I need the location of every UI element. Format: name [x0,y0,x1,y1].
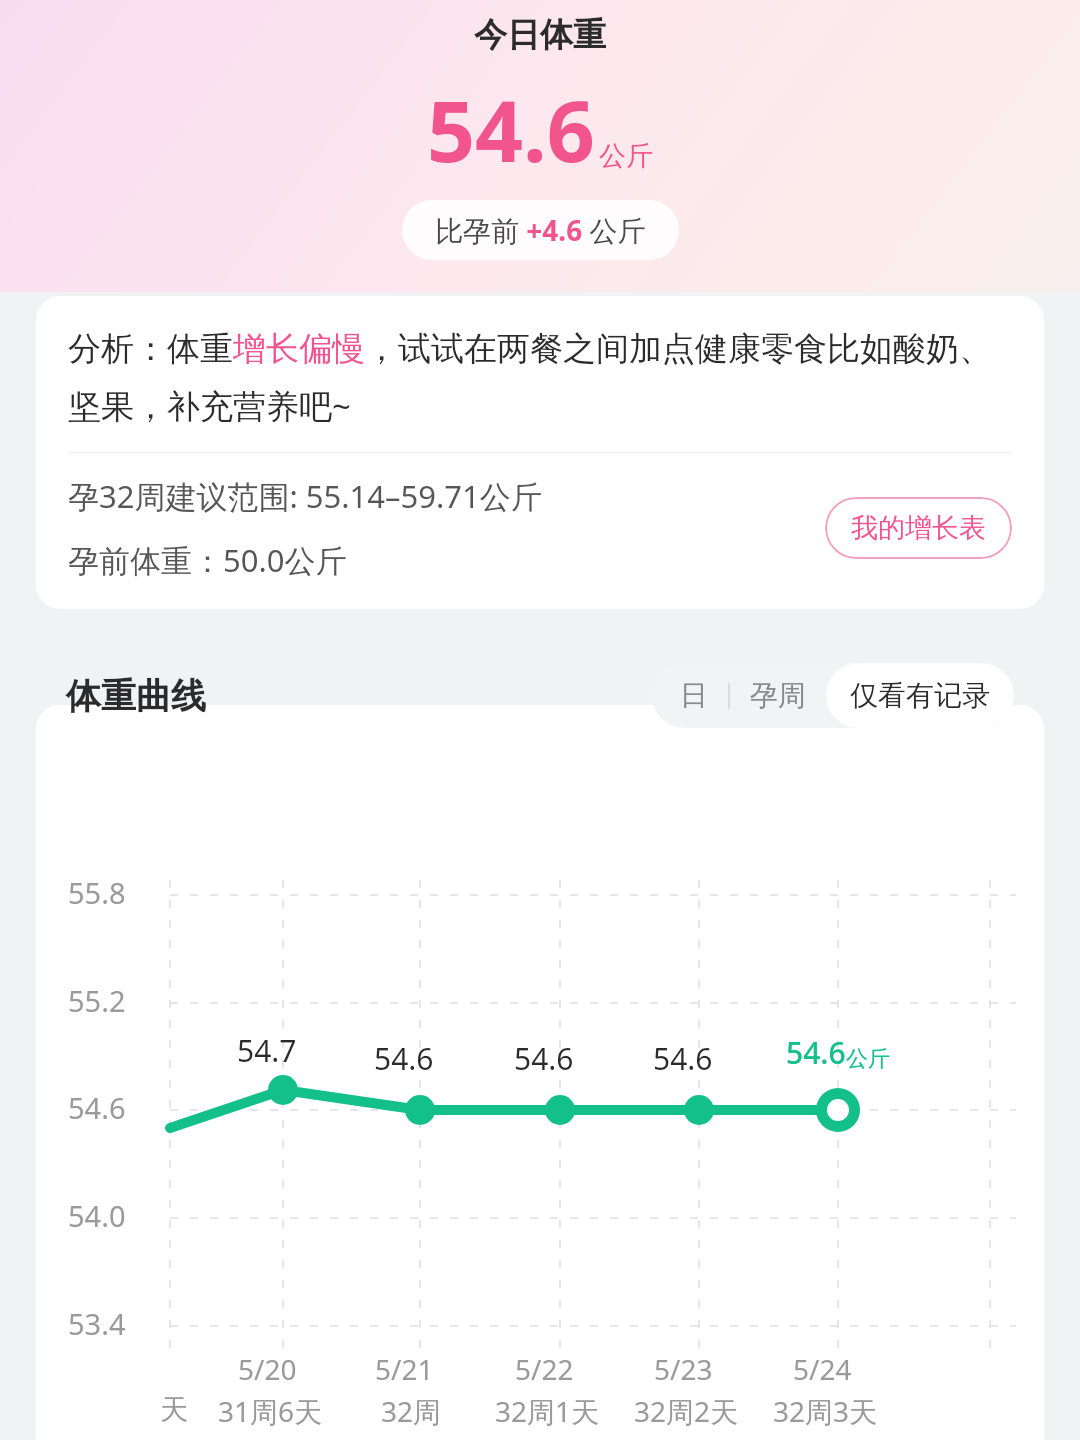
staticText: 54.6 [374,1038,434,1079]
staticText: 5/23 [654,1350,713,1388]
staticText: 仅看有记录 [850,678,990,713]
staticText: 32周2天 [634,1392,739,1430]
staticText: 53.4 [68,1304,126,1343]
staticText: 54.0 [68,1196,126,1235]
staticText: 5/21 [375,1350,434,1388]
staticText: 孕32周建议范围: 55.14–59.71公斤 [68,475,542,517]
staticText: 32周 [381,1392,442,1430]
button[interactable]: 比孕前 +4.6 公斤 [402,200,679,260]
staticText: 体重曲线 [66,674,206,718]
staticText: 比孕前 +4.6 公斤 [435,211,646,249]
staticText: 分析：体重增长偏慢，试试在两餐之间加点健康零食比如酸奶、坚果，补充营养吧~ [68,328,1012,428]
staticText: 55.2 [68,981,126,1020]
staticText: 54.6 [514,1038,574,1079]
staticText: 天 [160,1392,188,1427]
staticText: 孕前体重：50.0公斤 [68,539,347,581]
staticText: 54.6 [786,1032,846,1073]
staticText: 32周1天 [495,1392,600,1430]
button[interactable]: 仅看有记录 [826,663,1014,728]
staticText: 孕周 [750,678,806,713]
staticText: 公斤 [599,139,653,173]
staticText: 31周6天 [218,1392,323,1430]
staticText: 54.6 [68,1088,126,1127]
button[interactable]: 我的增长表 [825,497,1012,559]
staticText: 5/22 [515,1350,574,1388]
staticText: 55.8 [68,873,126,912]
staticText: 54.7 [237,1030,297,1071]
staticText: 54.6 [653,1038,713,1079]
staticText: 日 [680,678,708,713]
staticText: 我的增长表 [851,511,986,545]
staticText: 5/24 [793,1350,852,1388]
staticText: 5/20 [238,1350,297,1388]
button[interactable]: 孕周 [730,663,826,728]
staticText: 今日体重 [474,14,606,56]
staticText: 32周3天 [773,1392,878,1430]
staticText: 公斤 [846,1045,890,1073]
button[interactable]: 日 [652,663,728,728]
staticText: 54.6 [427,72,595,186]
